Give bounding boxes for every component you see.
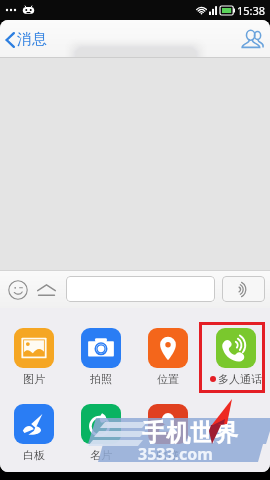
staticText: 拍照	[90, 372, 112, 386]
button[interactable]: 消息	[0, 25, 55, 54]
button[interactable]: 名片	[67, 404, 134, 462]
staticText: 多人通话	[218, 372, 262, 386]
button[interactable]: 拍照	[67, 328, 134, 386]
staticText: 位置	[157, 372, 179, 386]
staticText: 名片	[90, 448, 112, 462]
button[interactable]: 位置	[134, 328, 202, 386]
staticText: 白板	[23, 448, 45, 462]
staticText: 15:38	[237, 3, 266, 18]
staticText: 收藏	[157, 448, 179, 462]
button[interactable]: 白板	[0, 404, 67, 462]
button[interactable]: 收藏	[134, 404, 202, 462]
button[interactable]	[66, 276, 215, 302]
button[interactable]: Voice	[222, 276, 265, 302]
button[interactable]: Keyboard	[32, 275, 61, 304]
staticText: 3533.com	[138, 443, 213, 465]
button[interactable]: Contacts	[232, 27, 270, 51]
button[interactable]: 多人通话	[202, 328, 270, 386]
staticText: 图片	[23, 372, 45, 386]
staticText: 手机世界	[142, 418, 238, 448]
button[interactable]: 图片	[0, 328, 67, 386]
button[interactable]: Emoji	[3, 275, 32, 304]
staticText: 消息	[17, 30, 47, 49]
